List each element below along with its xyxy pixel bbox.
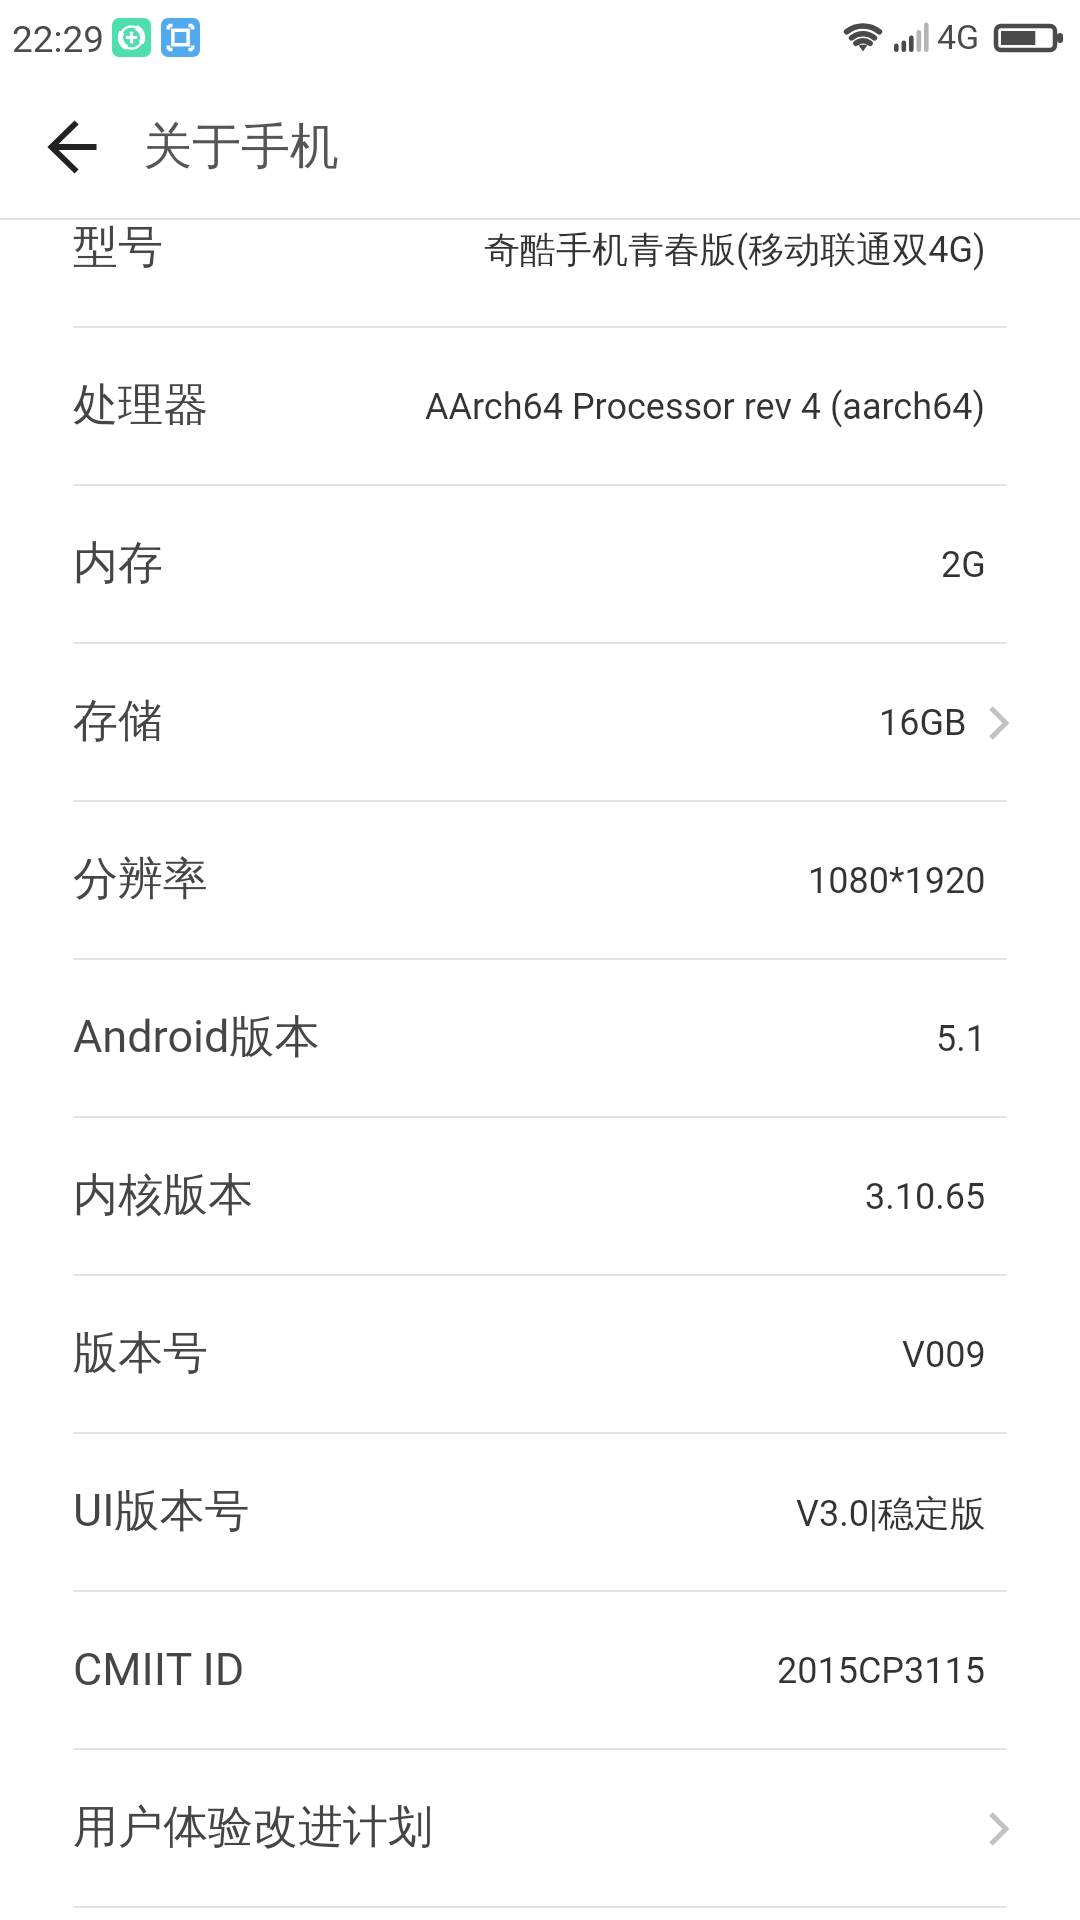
staticText: 1080*1920 <box>808 860 986 902</box>
staticText: 16GB <box>879 702 967 744</box>
staticText: CMIIT ID <box>73 1643 245 1696</box>
button[interactable]: 存储 <box>0 644 1080 802</box>
staticText: 处理器 <box>73 377 208 434</box>
staticText: V3.0|稳定版 <box>796 1491 986 1536</box>
button[interactable]: UI版本号 <box>0 1434 1080 1592</box>
button[interactable]: 分辨率 <box>0 802 1080 960</box>
button[interactable]: 型号 <box>0 218 1080 328</box>
button[interactable]: Back <box>28 107 116 189</box>
button[interactable]: 版本号 <box>0 1276 1080 1434</box>
staticText: 用户体验改进计划 <box>73 1799 433 1856</box>
staticText: V009 <box>902 1334 986 1376</box>
staticText: 型号 <box>73 219 163 276</box>
staticText: 关于手机 <box>143 116 339 178</box>
staticText: 3.10.65 <box>865 1176 986 1218</box>
staticText: Android版本 <box>73 1009 320 1066</box>
staticText: 奇酷手机青春版(移动联通双4G) <box>484 227 986 272</box>
staticText: 存储 <box>73 693 163 750</box>
staticText: 2015CP3115 <box>777 1650 986 1692</box>
staticText: 22:29 <box>12 18 105 61</box>
button[interactable]: 内存 <box>0 486 1080 644</box>
staticText: 内存 <box>73 535 163 592</box>
button[interactable]: CMIIT ID <box>0 1592 1080 1750</box>
button[interactable]: Android版本 <box>0 960 1080 1118</box>
button[interactable]: 用户体验改进计划 <box>0 1750 1080 1908</box>
staticText: 版本号 <box>73 1325 208 1382</box>
staticText: AArch64 Processor rev 4 (aarch64) <box>425 386 986 428</box>
staticText: 4G <box>937 17 980 57</box>
staticText: 5.1 <box>936 1018 986 1060</box>
staticText: 分辨率 <box>73 851 208 908</box>
staticText: 内核版本 <box>73 1167 253 1224</box>
button[interactable]: 内核版本 <box>0 1118 1080 1276</box>
button[interactable]: 处理器 <box>0 328 1080 486</box>
staticText: 2G <box>941 544 986 586</box>
staticText: UI版本号 <box>73 1483 250 1540</box>
